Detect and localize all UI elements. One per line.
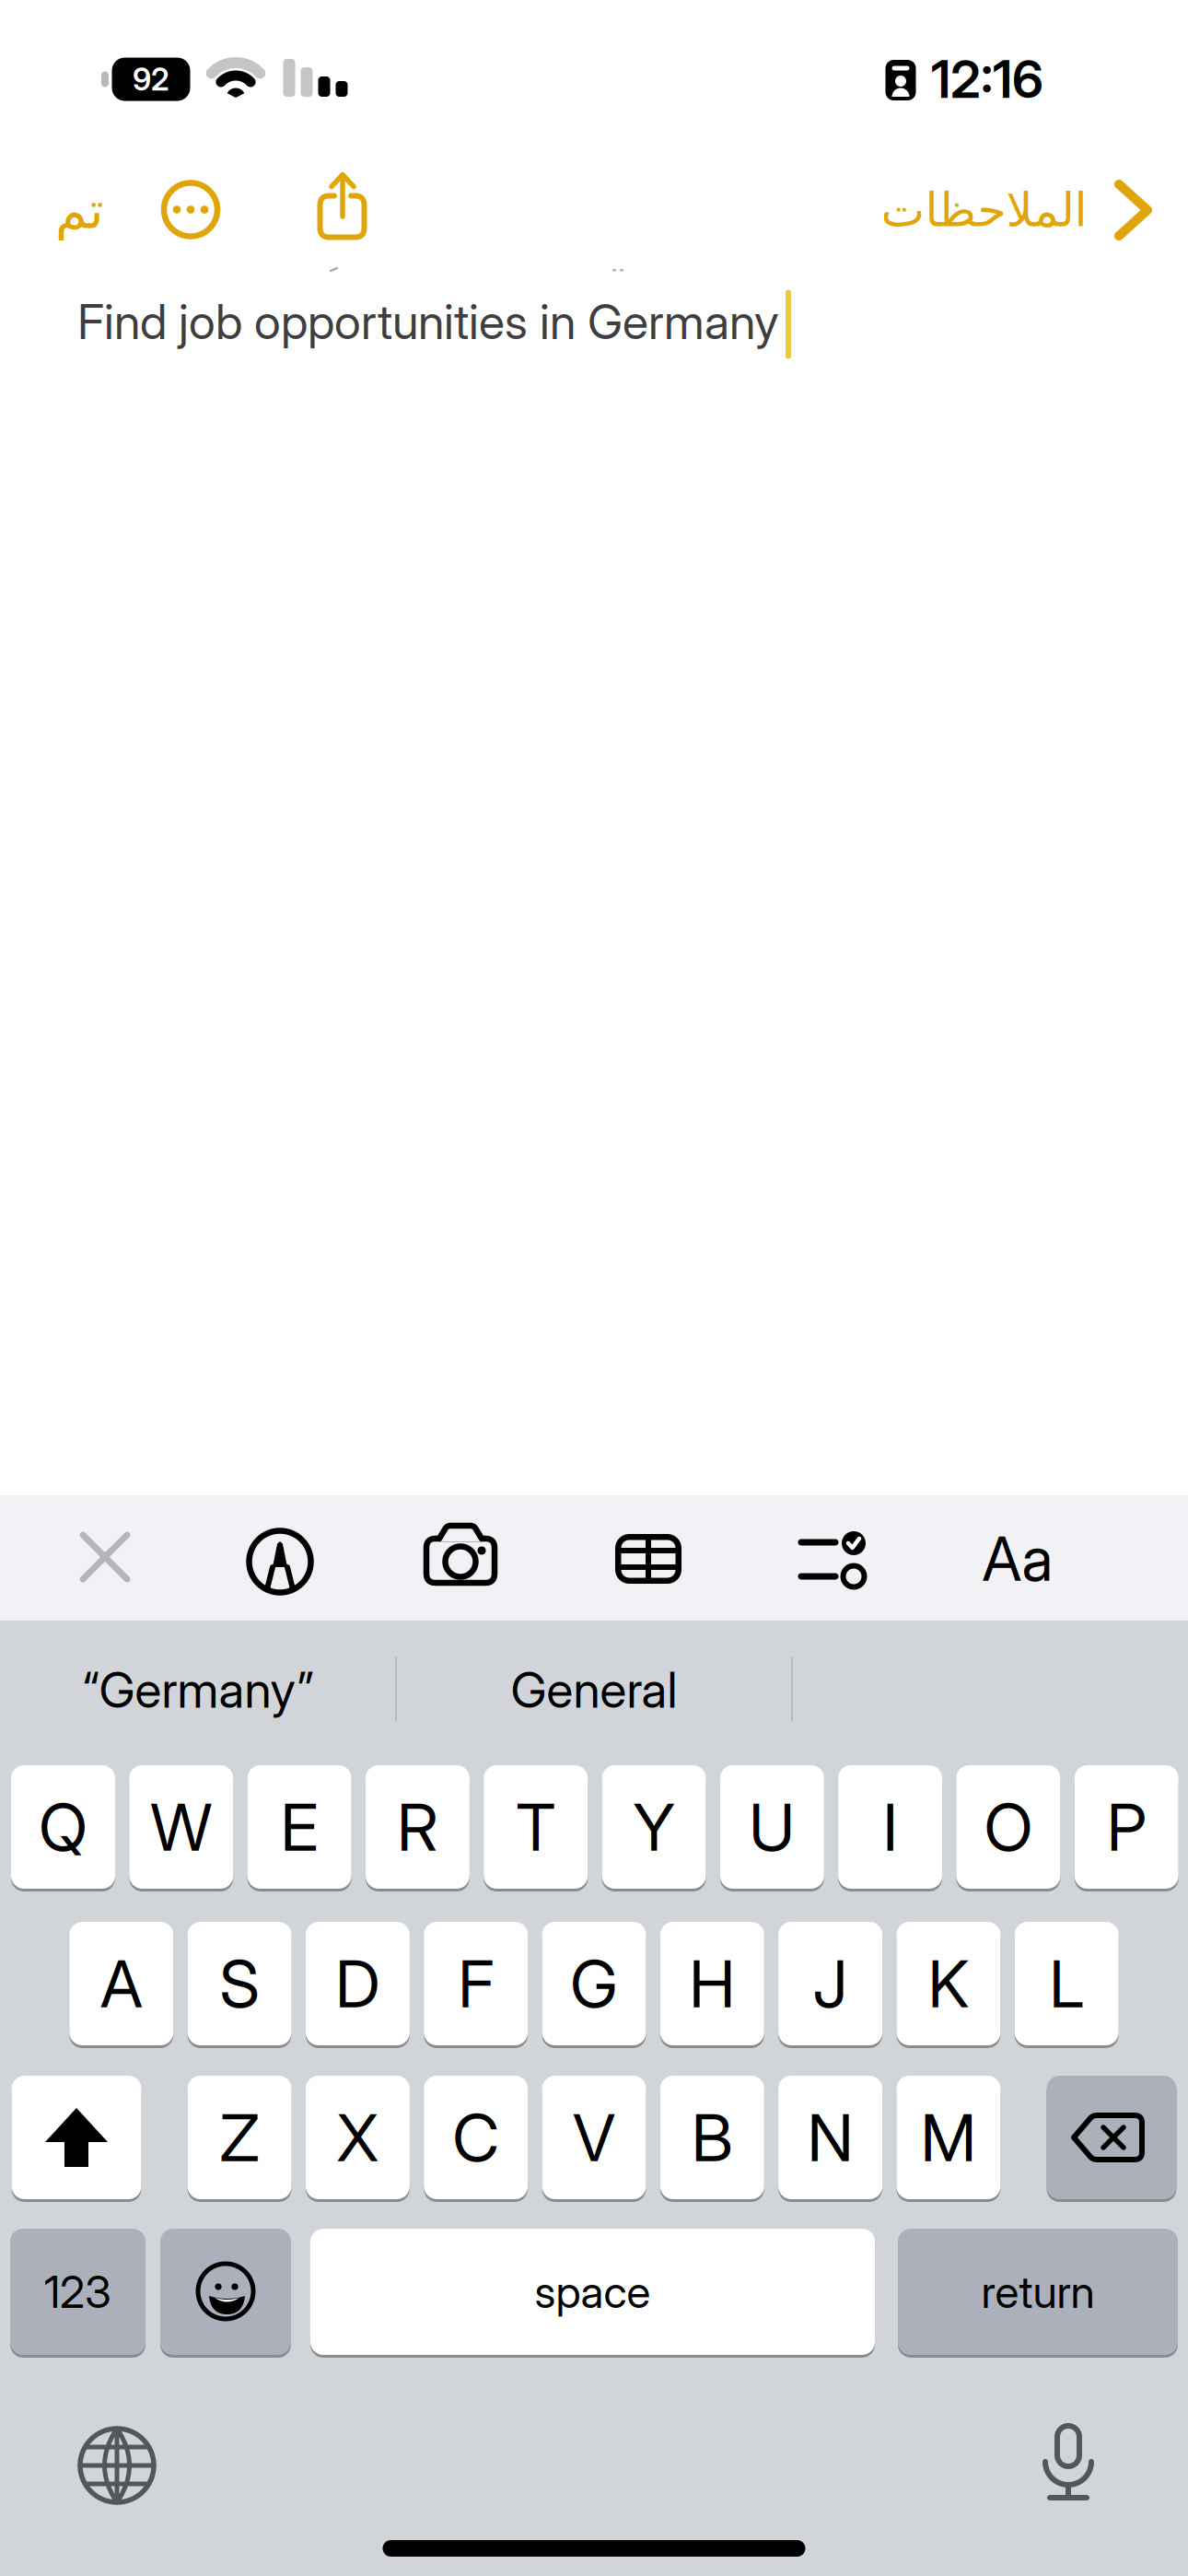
staticText: R [397, 1789, 438, 1865]
staticText: General [511, 1661, 677, 1719]
button[interactable]: C [0, 0, 1188, 2576]
button[interactable]: Y [0, 0, 1188, 2576]
staticText: Y [633, 1789, 675, 1865]
staticText: O [984, 1789, 1033, 1865]
staticText: W [150, 1789, 212, 1865]
button[interactable]: K [0, 0, 1188, 2576]
button[interactable] [0, 0, 1188, 2576]
staticText: G [570, 1945, 618, 2022]
staticText: Find job opportunities in Germany [77, 293, 779, 350]
button[interactable] [0, 0, 1188, 2576]
button[interactable] [0, 0, 1188, 2576]
staticText: I [883, 1789, 898, 1865]
button[interactable]: I [0, 0, 1188, 2576]
staticText: J [813, 1945, 848, 2022]
button[interactable] [0, 0, 1188, 2576]
button[interactable] [0, 0, 1188, 2576]
staticText: space [535, 2266, 651, 2318]
button[interactable]: الملاحظات [0, 0, 1188, 2576]
button[interactable]: M [0, 0, 1188, 2576]
button[interactable]: General [0, 0, 1188, 2576]
staticText: Z [220, 2099, 259, 2176]
button[interactable]: G [0, 0, 1188, 2576]
staticText: T [516, 1789, 556, 1865]
staticText: D [335, 1945, 380, 2022]
staticText: B [691, 2099, 733, 2176]
staticText: E [281, 1789, 318, 1865]
button[interactable]: S [0, 0, 1188, 2576]
button[interactable]: E [0, 0, 1188, 2576]
button[interactable]: J [0, 0, 1188, 2576]
staticText: P [1107, 1789, 1146, 1865]
button[interactable] [0, 0, 1188, 2576]
button[interactable]: Q [0, 0, 1188, 2576]
staticText: تم [55, 181, 104, 239]
staticText: H [689, 1945, 735, 2022]
button[interactable]: Z [0, 0, 1188, 2576]
staticText: N [807, 2099, 853, 2176]
button[interactable] [0, 0, 1188, 2576]
button[interactable] [0, 0, 1188, 2576]
staticText: L [1049, 1945, 1084, 2022]
staticText: 12:16 [931, 49, 1043, 110]
staticText: “Germany” [82, 1661, 314, 1719]
button[interactable]: 123 [0, 0, 1188, 2576]
button[interactable]: O [0, 0, 1188, 2576]
staticText: A [100, 1945, 143, 2022]
staticText: U [749, 1789, 795, 1865]
button[interactable]: R [0, 0, 1188, 2576]
button[interactable] [0, 0, 1188, 2576]
staticText: C [452, 2099, 499, 2176]
staticText: Q [39, 1789, 87, 1865]
staticText: M [920, 2099, 977, 2176]
staticText: F [458, 1945, 494, 2022]
staticText: return [981, 2266, 1095, 2318]
button[interactable]: N [0, 0, 1188, 2576]
button[interactable]: X [0, 0, 1188, 2576]
button[interactable] [0, 0, 1188, 2576]
button[interactable]: Aa [0, 0, 1188, 2576]
button[interactable]: F [0, 0, 1188, 2576]
button[interactable]: P [0, 0, 1188, 2576]
staticText: Aa [982, 1523, 1053, 1594]
button[interactable]: V [0, 0, 1188, 2576]
button[interactable]: B [0, 0, 1188, 2576]
button[interactable]: A [0, 0, 1188, 2576]
button[interactable]: space [0, 0, 1188, 2576]
button[interactable] [0, 0, 1188, 2576]
button[interactable]: T [0, 0, 1188, 2576]
button[interactable]: W [0, 0, 1188, 2576]
button[interactable]: H [0, 0, 1188, 2576]
staticText: 92 [133, 61, 169, 97]
button[interactable] [0, 0, 1188, 2576]
button[interactable]: U [0, 0, 1188, 2576]
button[interactable]: return [0, 0, 1188, 2576]
staticText: الملاحظات [880, 184, 1087, 237]
staticText: X [337, 2099, 379, 2176]
button[interactable]: “Germany” [0, 0, 1188, 2576]
staticText: 123 [44, 2266, 111, 2318]
staticText: V [573, 2099, 615, 2176]
button[interactable] [0, 0, 1188, 2576]
staticText: S [220, 1945, 259, 2022]
button[interactable]: D [0, 0, 1188, 2576]
button[interactable]: تم [0, 0, 1188, 2576]
button[interactable]: L [0, 0, 1188, 2576]
staticText: K [928, 1945, 969, 2022]
